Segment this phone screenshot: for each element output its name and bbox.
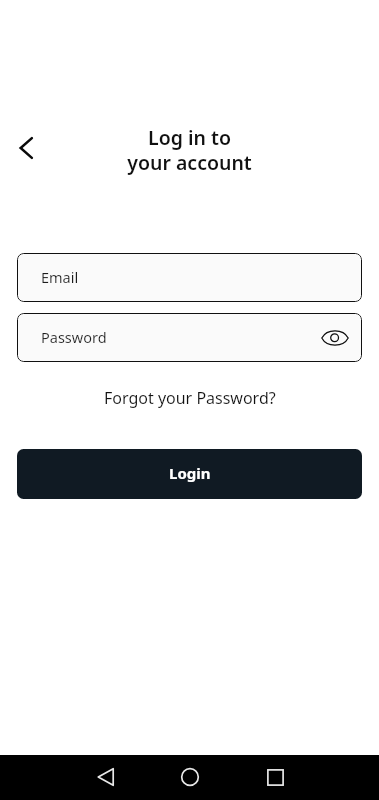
button[interactable]: Recent apps: [253, 755, 297, 799]
button[interactable]: Forgot your Password?: [94, 383, 286, 413]
button[interactable]: Back: [5, 128, 45, 168]
staticText: Forgot your Password?: [104, 387, 276, 409]
button[interactable]: Back: [83, 755, 127, 799]
staticText: Password: [41, 327, 107, 347]
button[interactable]: Login: [17, 449, 362, 499]
button[interactable]: Password: [17, 313, 362, 362]
button[interactable]: Show password: [320, 323, 350, 353]
button[interactable]: Email: [17, 253, 362, 302]
staticText: Login: [169, 463, 211, 483]
staticText: Log in to your account: [127, 124, 252, 176]
button[interactable]: Home: [168, 755, 212, 799]
staticText: Email: [41, 267, 79, 287]
